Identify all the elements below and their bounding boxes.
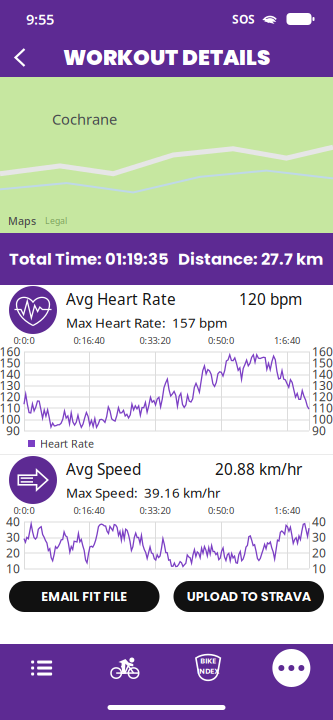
staticText: 20	[6, 545, 20, 561]
staticText: 0:0:0	[13, 504, 34, 517]
staticText: 160	[0, 343, 20, 360]
staticText: 1:6:40	[274, 334, 300, 347]
staticText: 10	[6, 560, 20, 577]
staticText: 30	[6, 529, 20, 545]
staticText: 0:16:40	[73, 504, 104, 517]
staticText: 120	[312, 388, 333, 405]
staticText: Total Time: 01:19:35	[9, 247, 169, 270]
button[interactable]: EMAIL FIT FILE	[9, 581, 159, 612]
button[interactable]: Rides	[83, 645, 166, 691]
staticText: 90	[312, 422, 326, 439]
staticText: 40	[312, 513, 326, 530]
staticText: 0:0:0	[13, 334, 34, 347]
staticText: WORKOUT DETAILS	[63, 43, 270, 72]
staticText: 140	[312, 366, 333, 382]
staticText: Heart Rate	[40, 436, 94, 451]
staticText: 0:33:20	[139, 504, 170, 517]
staticText: 1:6:40	[274, 504, 300, 517]
staticText: 160	[312, 343, 333, 360]
staticText: 10	[312, 560, 326, 577]
staticText: 140	[0, 366, 20, 382]
staticText: 0:50:0	[208, 504, 234, 517]
staticText: 110	[0, 400, 20, 416]
staticText: 110	[312, 400, 333, 416]
staticText: 9:55	[26, 9, 54, 29]
staticText: Maps	[8, 213, 36, 228]
staticText: 100	[312, 411, 333, 427]
staticText: 120	[0, 388, 20, 405]
staticText: 90	[6, 422, 20, 439]
button[interactable]: Bike Index	[166, 645, 250, 691]
staticText: BIKE	[200, 656, 216, 666]
staticText: 20.88 km/hr	[215, 459, 302, 479]
staticText: Avg Speed	[66, 459, 141, 479]
staticText: 20	[312, 545, 326, 561]
staticText: 40	[6, 513, 20, 530]
staticText: 30	[312, 529, 326, 545]
staticText: INDEX	[197, 666, 219, 676]
staticText: Avg Heart Rate	[66, 289, 176, 309]
button[interactable]: Back	[0, 38, 40, 76]
staticText: UPLOAD TO STRAVA	[187, 588, 311, 605]
staticText: 0:50:0	[208, 334, 234, 347]
staticText: EMAIL FIT FILE	[41, 588, 127, 605]
staticText: 0:33:20	[139, 334, 170, 347]
button[interactable]: UPLOAD TO STRAVA	[173, 581, 324, 612]
staticText: Legal	[45, 215, 67, 227]
staticText: 150	[0, 355, 20, 371]
staticText: 100	[0, 411, 20, 427]
staticText: 120 bpm	[239, 289, 302, 309]
staticText: Max Speed: 39.16 km/hr	[66, 483, 221, 502]
staticText: 0:16:40	[73, 334, 104, 347]
staticText: 130	[312, 377, 333, 393]
staticText: SOS	[232, 11, 255, 27]
staticText: 150	[312, 355, 333, 371]
staticText: Distance: 27.7 km	[178, 247, 323, 270]
button[interactable]: More	[250, 645, 333, 691]
staticText: Cochrane	[52, 109, 117, 129]
staticText: Max Heart Rate: 157 bpm	[66, 313, 227, 332]
staticText: 130	[0, 377, 20, 393]
button[interactable]: List	[0, 645, 83, 691]
